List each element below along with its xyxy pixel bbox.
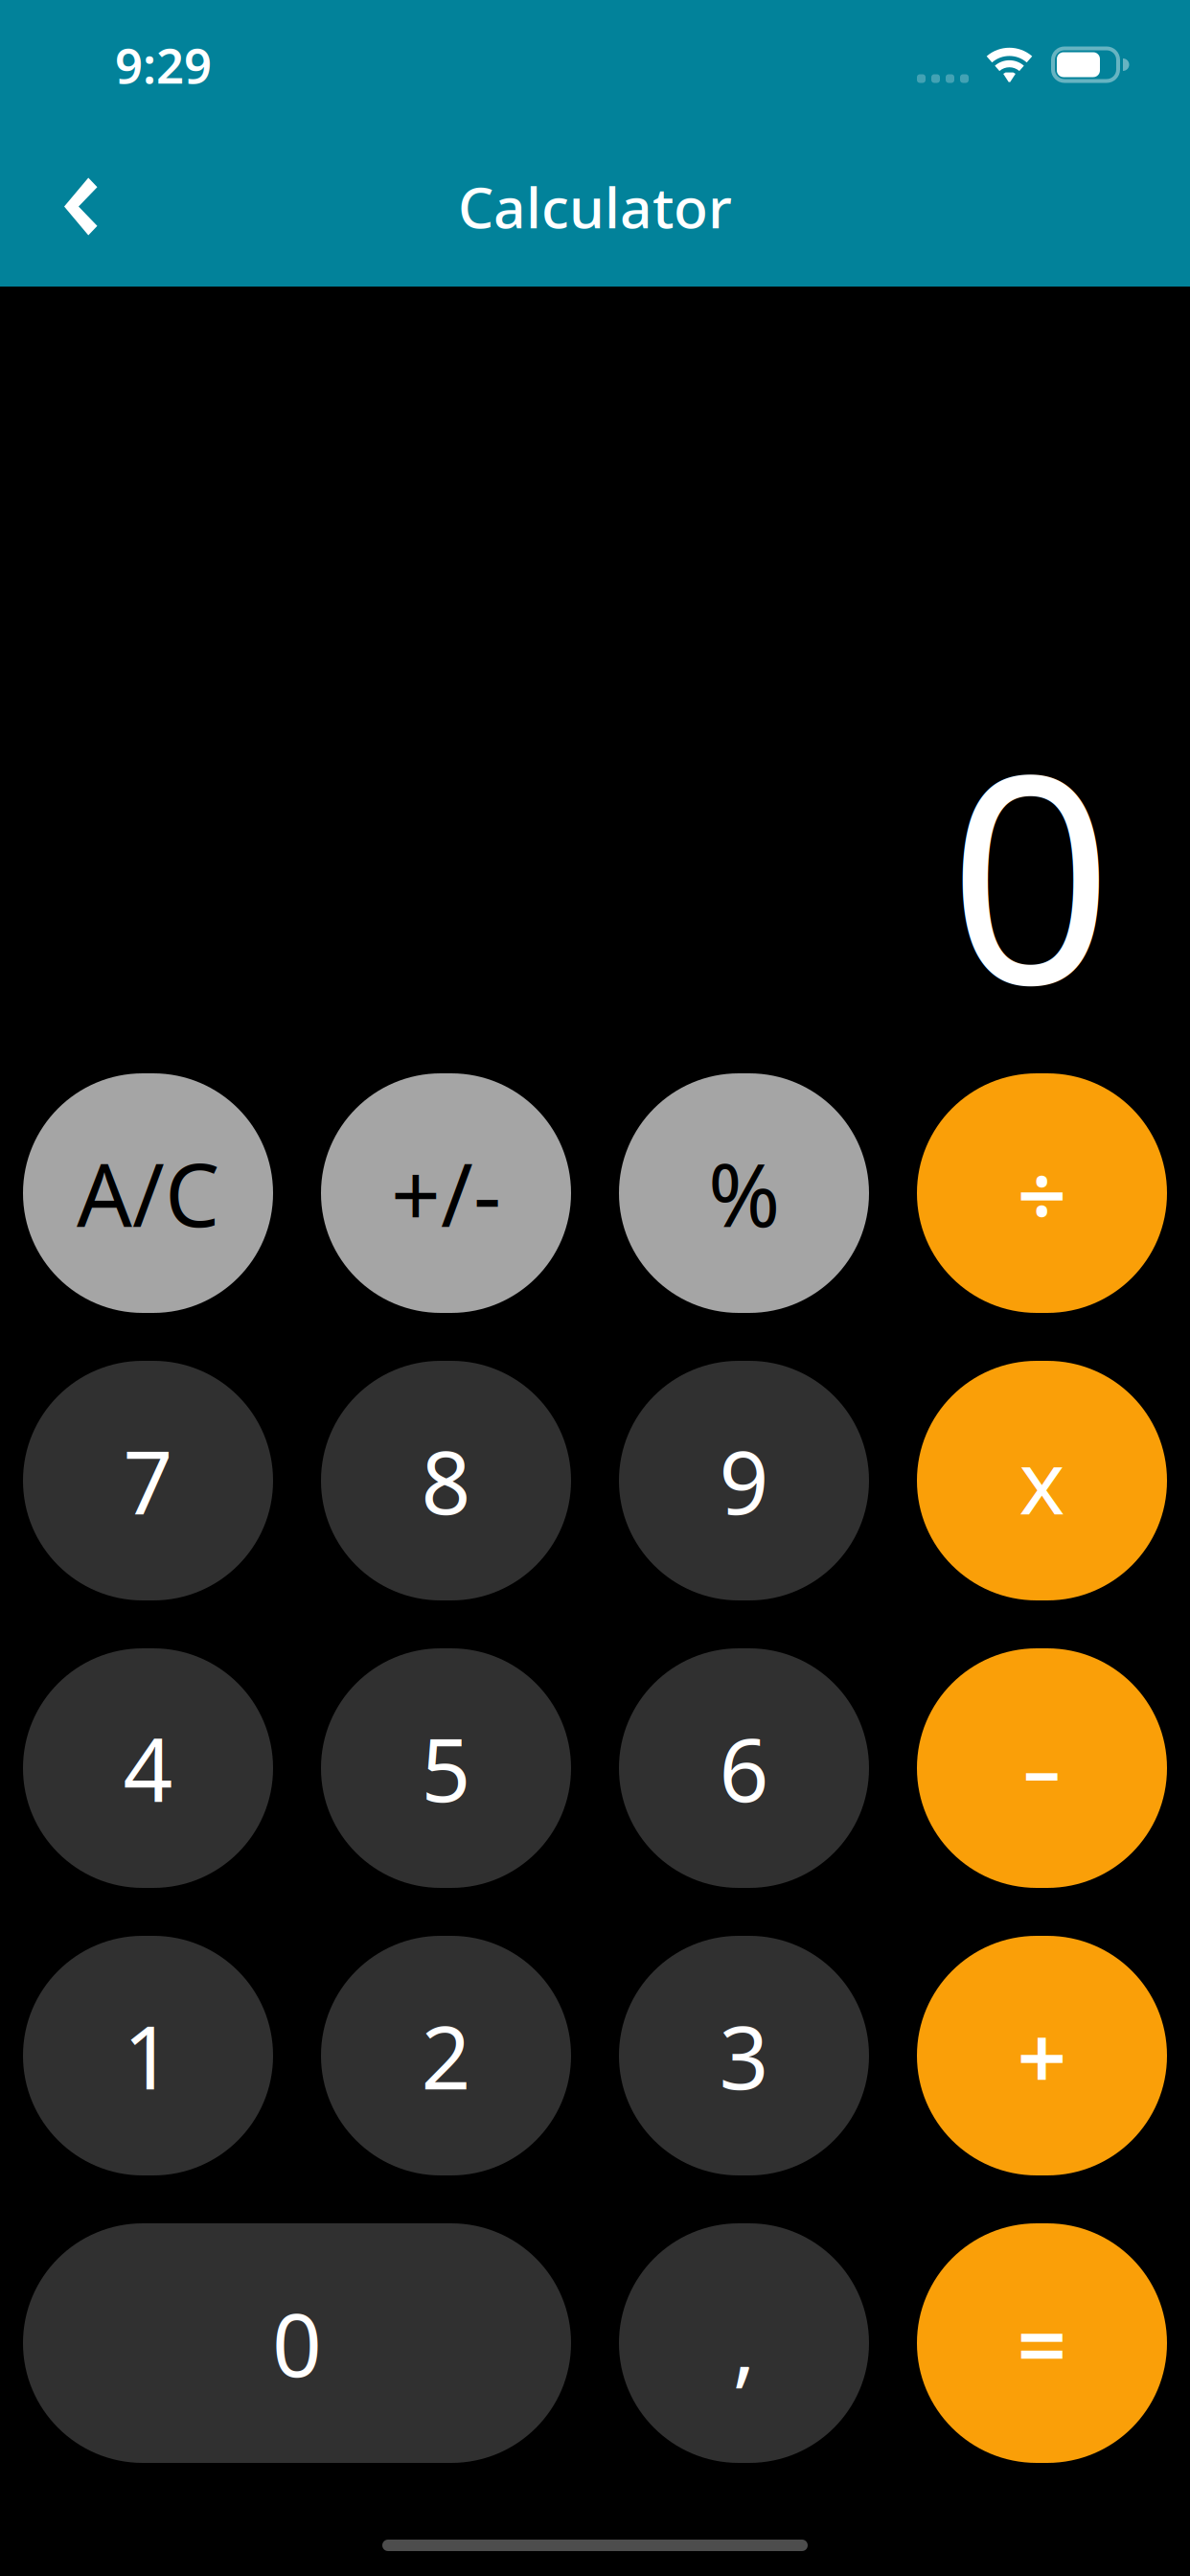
button[interactable]: 0 [23, 2223, 571, 2463]
button[interactable]: x [917, 1361, 1167, 1600]
button[interactable]: 6 [619, 1648, 869, 1888]
staticText: 3 [719, 1998, 769, 2113]
staticText: ÷ [1017, 1135, 1067, 1251]
staticText: – [1023, 1719, 1061, 1817]
staticText: Calculator [458, 169, 732, 244]
staticText: 5 [421, 1710, 471, 1826]
staticText: 0 [272, 2285, 322, 2401]
button[interactable]: 3 [619, 1936, 869, 2175]
button[interactable]: 9 [619, 1361, 869, 1600]
button[interactable]: = [917, 2223, 1167, 2463]
staticText: 0 [949, 681, 1113, 1063]
button[interactable]: + [917, 1936, 1167, 2175]
button[interactable]: % [619, 1073, 869, 1313]
staticText: A/C [77, 1135, 219, 1251]
staticText: = [1017, 2285, 1067, 2401]
button[interactable]: 2 [321, 1936, 571, 2175]
staticText: 9 [719, 1423, 769, 1538]
button[interactable]: A/C [23, 1073, 273, 1313]
button[interactable]: 7 [23, 1361, 273, 1600]
staticText: x [1019, 1423, 1065, 1538]
staticText: 6 [719, 1710, 769, 1826]
staticText: 2 [421, 1998, 471, 2113]
button[interactable]: ÷ [917, 1073, 1167, 1313]
staticText: 9:29 [115, 32, 212, 97]
staticText: + [1017, 1998, 1067, 2113]
staticText: +/- [391, 1135, 501, 1251]
button[interactable]: 8 [321, 1361, 571, 1600]
staticText: 8 [421, 1423, 471, 1538]
button[interactable]: 5 [321, 1648, 571, 1888]
button[interactable]: – [917, 1648, 1167, 1888]
staticText: , [732, 2285, 755, 2401]
staticText: 7 [123, 1423, 173, 1538]
button[interactable]: +/- [321, 1073, 571, 1313]
button[interactable]: , [619, 2223, 869, 2463]
button[interactable]: 4 [23, 1648, 273, 1888]
staticText: 1 [123, 1998, 173, 2113]
staticText: 4 [123, 1710, 173, 1826]
staticText: % [708, 1135, 780, 1251]
button[interactable]: Back [23, 144, 138, 269]
button[interactable]: 1 [23, 1936, 273, 2175]
